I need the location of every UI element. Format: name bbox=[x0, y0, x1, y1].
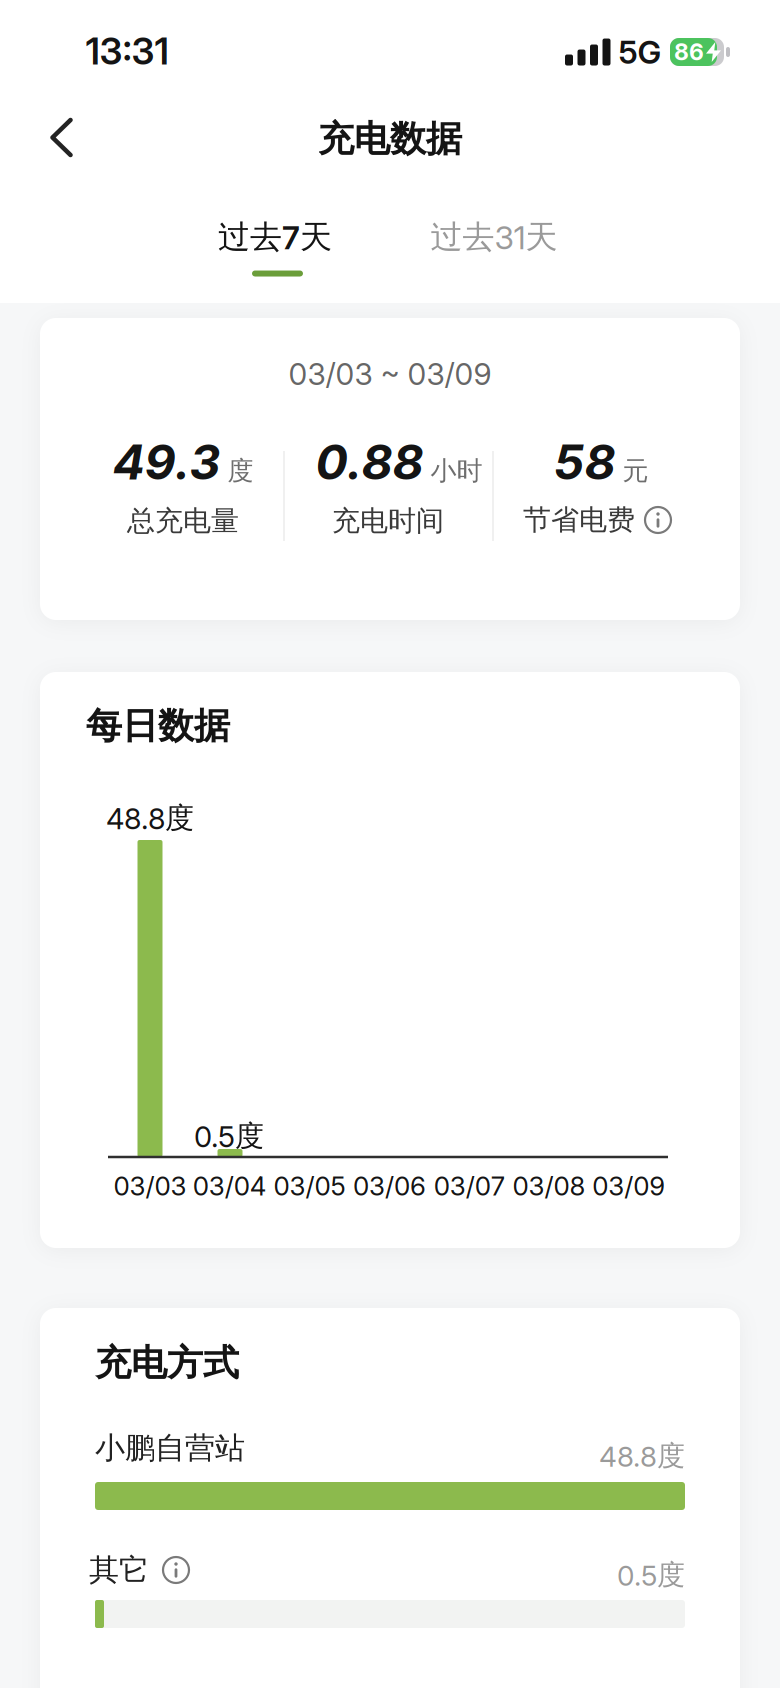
staticText: 小时 bbox=[430, 454, 482, 487]
staticText: 总充电量 bbox=[127, 503, 239, 539]
staticText: 充电数据 bbox=[318, 116, 462, 162]
staticText: 其它 bbox=[89, 1551, 149, 1589]
staticText: 03/03 ~ 03/09 bbox=[288, 356, 491, 392]
staticText: 充电方式 bbox=[95, 1340, 239, 1386]
staticText: 过去7天 bbox=[218, 217, 332, 257]
staticText: 0.5度 bbox=[194, 1118, 264, 1154]
staticText: 03/03 bbox=[113, 1170, 186, 1202]
staticText: 5G bbox=[618, 33, 661, 71]
staticText: 度 bbox=[227, 454, 253, 487]
staticText: 03/09 bbox=[592, 1170, 665, 1202]
staticText: 0.5度 bbox=[617, 1557, 685, 1593]
staticText: 03/07 bbox=[434, 1170, 505, 1202]
staticText: 元 bbox=[622, 454, 648, 487]
staticText: 03/08 bbox=[512, 1170, 585, 1202]
staticText: 49.3 bbox=[112, 433, 220, 491]
staticText: 03/05 bbox=[274, 1170, 346, 1202]
button[interactable]: 节省电费说明 bbox=[645, 507, 671, 533]
staticText: 86 bbox=[674, 38, 704, 66]
button[interactable]: Back bbox=[39, 115, 83, 160]
button[interactable]: 过去31天 bbox=[430, 217, 557, 257]
button[interactable]: 其它说明 bbox=[163, 1557, 189, 1583]
staticText: 58 bbox=[553, 433, 615, 491]
staticText: 过去31天 bbox=[430, 217, 557, 257]
staticText: 充电时间 bbox=[332, 503, 444, 539]
button[interactable]: 过去7天 bbox=[218, 217, 332, 257]
staticText: 48.8度 bbox=[106, 800, 194, 836]
staticText: 48.8度 bbox=[599, 1438, 685, 1474]
staticText: 每日数据 bbox=[86, 703, 230, 749]
staticText: 03/06 bbox=[353, 1170, 426, 1202]
staticText: 节省电费 bbox=[523, 502, 635, 538]
staticText: 0.88 bbox=[315, 433, 423, 491]
staticText: 13:31 bbox=[85, 29, 168, 73]
staticText: 03/04 bbox=[193, 1170, 267, 1202]
staticText: 小鹏自营站 bbox=[95, 1429, 245, 1467]
